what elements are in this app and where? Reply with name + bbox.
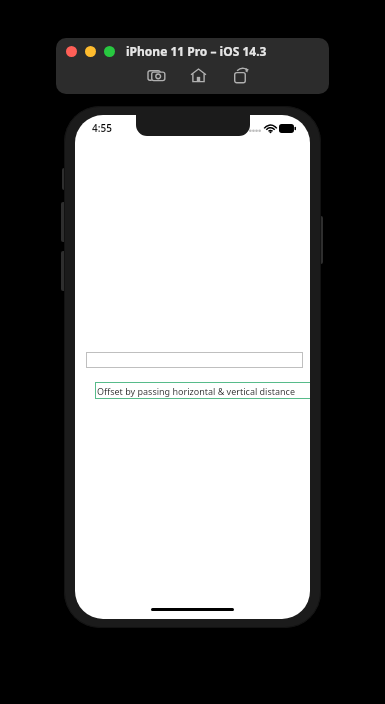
- button[interactable]: Zoom: [104, 46, 115, 57]
- button[interactable]: Offset by passing horizontal & vertical …: [95, 382, 310, 399]
- staticText: 4:55: [92, 121, 112, 135]
- staticText: iPhone 11 Pro – iOS 14.3: [126, 43, 267, 59]
- button[interactable]: Close: [66, 46, 77, 57]
- button[interactable]: Home: [187, 64, 209, 86]
- button[interactable]: Rotate: [229, 64, 251, 86]
- staticText: Offset by passing horizontal & vertical …: [97, 385, 296, 397]
- button[interactable]: Screenshot: [145, 64, 167, 86]
- button[interactable]: Minimize: [85, 46, 96, 57]
